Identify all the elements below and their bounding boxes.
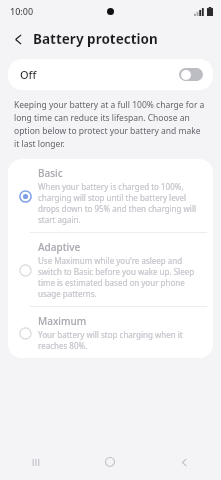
staticText: Battery protection (33, 30, 158, 48)
staticText: Keeping your battery at a full 100% char… (14, 99, 207, 150)
button[interactable]: Navigate up (6, 27, 30, 51)
button[interactable]: Maximum (8, 307, 213, 358)
staticText: 10:00 (10, 5, 34, 17)
staticText: Maximum (38, 314, 87, 328)
button[interactable]: Off (8, 59, 213, 90)
staticText: Off (20, 67, 37, 82)
staticText: Basic (38, 166, 63, 180)
staticText: Use Maximum while you're asleep and swit… (38, 255, 203, 299)
staticText: When your battery is charged to 100%, ch… (38, 181, 203, 225)
button[interactable]: Adaptive (8, 233, 213, 306)
staticText: Adaptive (38, 240, 81, 254)
button[interactable]: Basic (8, 159, 213, 232)
button[interactable]: Home (73, 444, 147, 480)
button[interactable]: Recent apps (0, 444, 73, 480)
staticText: Your battery will stop charging when it … (38, 329, 203, 351)
